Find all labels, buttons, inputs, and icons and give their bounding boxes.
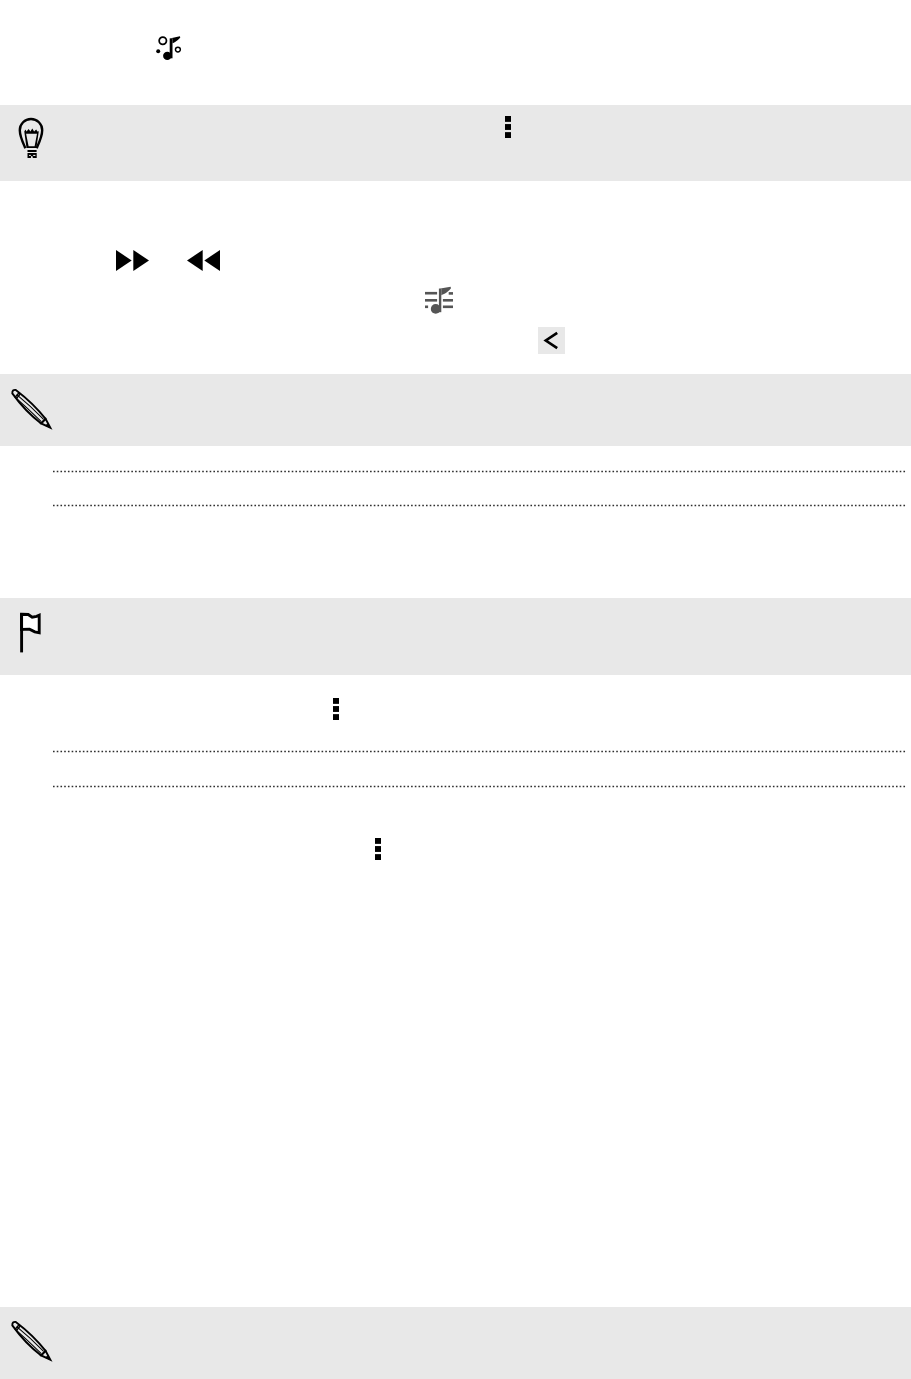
button[interactable]: Music <box>156 36 182 60</box>
button[interactable]: Rewind <box>187 250 220 271</box>
button[interactable]: Back <box>538 327 565 354</box>
other: Important <box>20 613 40 653</box>
button[interactable]: Fast forward <box>116 250 149 271</box>
button[interactable]: More options <box>375 838 381 860</box>
button[interactable]: More options <box>505 116 511 138</box>
other: Tip <box>19 118 43 158</box>
button[interactable]: More options <box>333 698 339 720</box>
other: Note <box>11 1321 51 1361</box>
button[interactable]: Playlist <box>425 287 453 313</box>
other: Note <box>11 389 51 429</box>
